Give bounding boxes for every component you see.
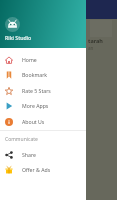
staticText: an [88, 45, 94, 51]
button[interactable]: Bookmark [0, 67, 86, 82]
staticText: Riki Studio [5, 34, 32, 41]
staticText: More Apps [22, 102, 49, 109]
staticText: Rate 5 Stars [22, 87, 51, 94]
button[interactable]: Share [0, 147, 86, 162]
button[interactable]: Offer & Ads [0, 162, 86, 177]
staticText: tarah [88, 37, 103, 44]
staticText: About Us [22, 118, 45, 125]
staticText: Communicate [5, 136, 38, 143]
button[interactable]: Home [0, 52, 86, 67]
button[interactable]: Rate 5 Stars [0, 83, 86, 98]
staticText: Home [22, 56, 37, 63]
staticText: Share [22, 151, 36, 158]
button[interactable]: More Apps [0, 98, 86, 113]
staticText: Bookmark [22, 71, 48, 78]
button[interactable]: About Us [0, 114, 86, 129]
button[interactable]: Riki Studio [0, 0, 86, 48]
staticText: Offer & Ads [22, 166, 51, 173]
